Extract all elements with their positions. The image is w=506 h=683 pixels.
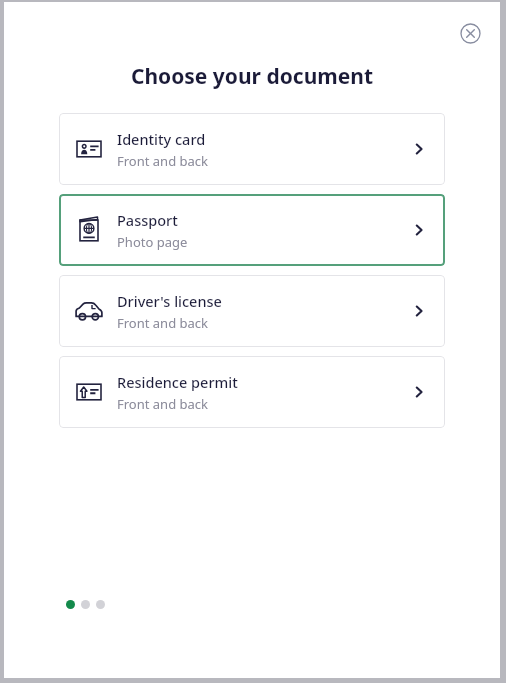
staticText: Front and back: [117, 395, 209, 413]
staticText: Choose your document: [4, 62, 500, 91]
button[interactable]: Close: [453, 16, 487, 50]
staticText: Identity card: [117, 129, 206, 149]
button[interactable]: Residence permit: [59, 356, 445, 428]
staticText: Photo page: [117, 233, 188, 251]
staticText: Driver's license: [117, 291, 222, 311]
staticText: Passport: [117, 210, 178, 230]
button[interactable]: Passport: [59, 194, 445, 266]
button[interactable]: Identity card: [59, 113, 445, 185]
button[interactable]: Driver's license: [59, 275, 445, 347]
staticText: Residence permit: [117, 372, 238, 392]
staticText: Front and back: [117, 314, 209, 332]
staticText: Front and back: [117, 152, 209, 170]
